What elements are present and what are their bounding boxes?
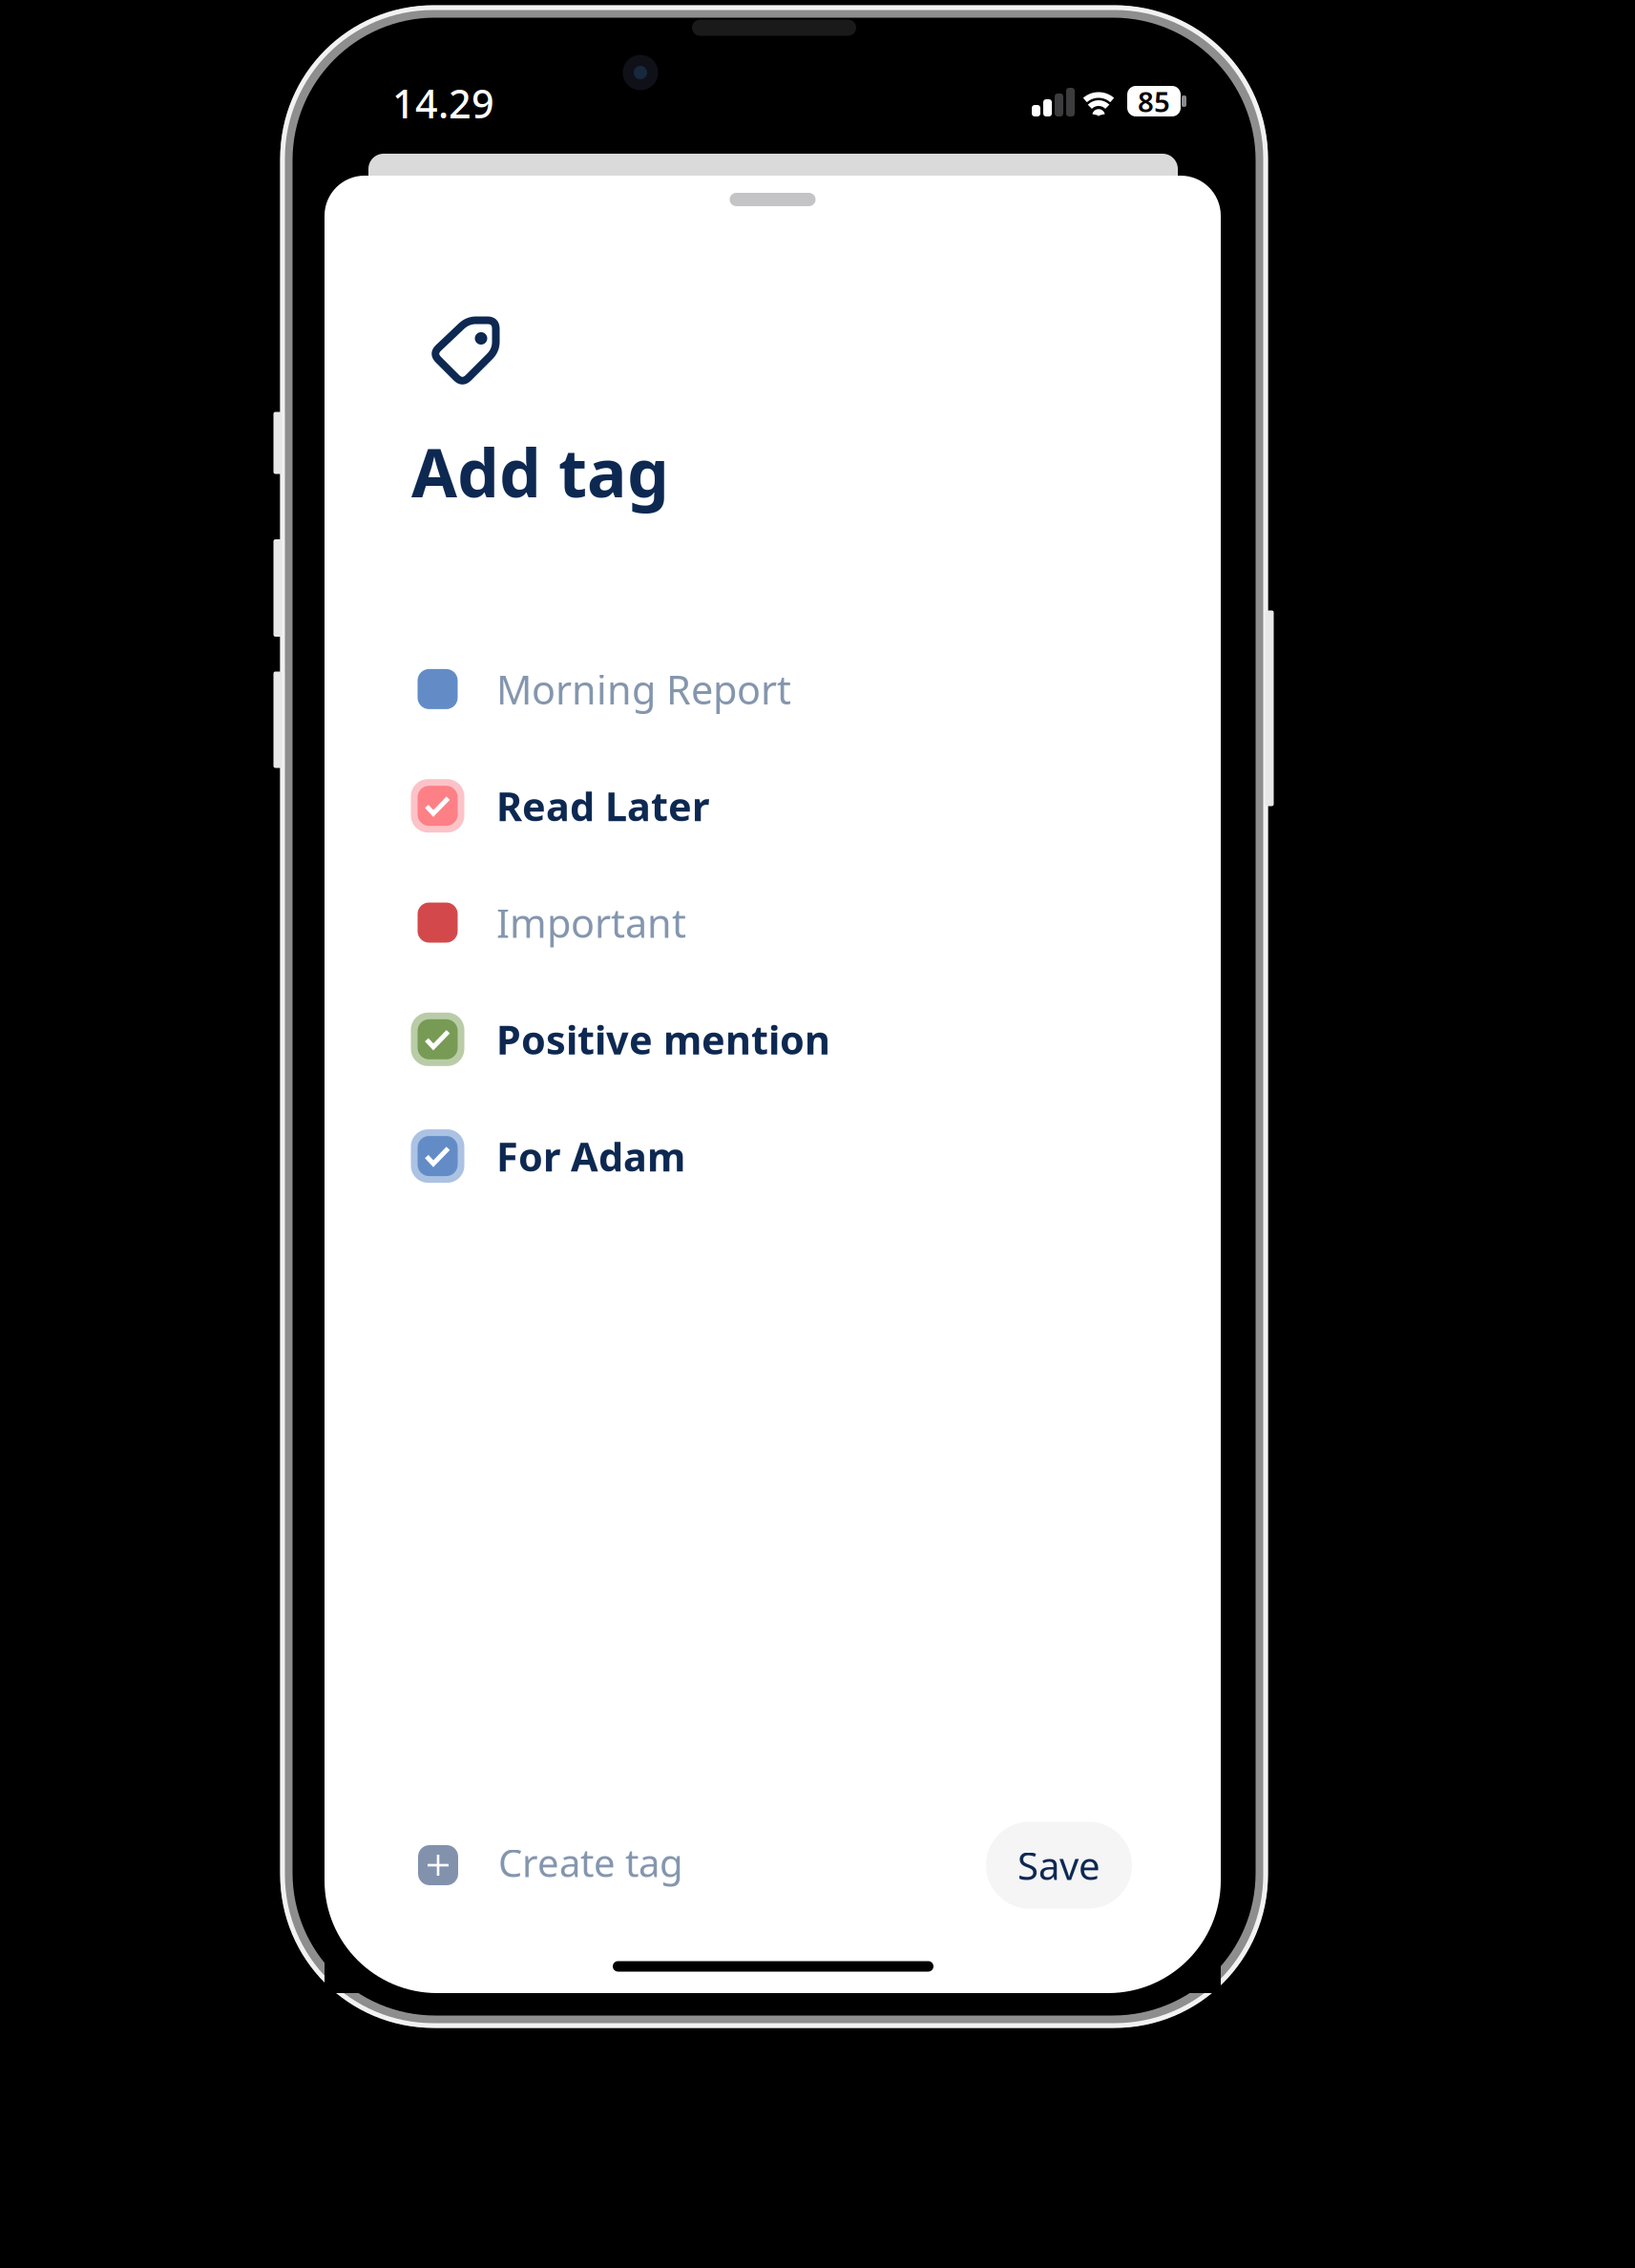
button[interactable]: Morning Report xyxy=(325,637,1221,742)
staticText: Important xyxy=(496,896,686,949)
staticText: For Adam xyxy=(496,1130,685,1182)
button[interactable]: Positive mention xyxy=(325,987,1221,1092)
staticText: Save xyxy=(1017,1840,1100,1890)
button[interactable]: Create tag xyxy=(418,1819,819,1905)
staticText: Read Later xyxy=(496,780,709,832)
button[interactable]: Save xyxy=(986,1819,1132,1906)
staticText: Add tag xyxy=(411,428,669,516)
staticText: Create tag xyxy=(498,1837,683,1888)
staticText: Morning Report xyxy=(496,663,791,715)
staticText: Positive mention xyxy=(496,1013,830,1066)
button[interactable]: For Adam xyxy=(325,1104,1221,1209)
staticText: 85 xyxy=(1138,83,1170,120)
button[interactable]: Important xyxy=(325,870,1221,975)
staticText: 14.29 xyxy=(392,77,494,129)
button[interactable]: Read Later xyxy=(325,753,1221,858)
